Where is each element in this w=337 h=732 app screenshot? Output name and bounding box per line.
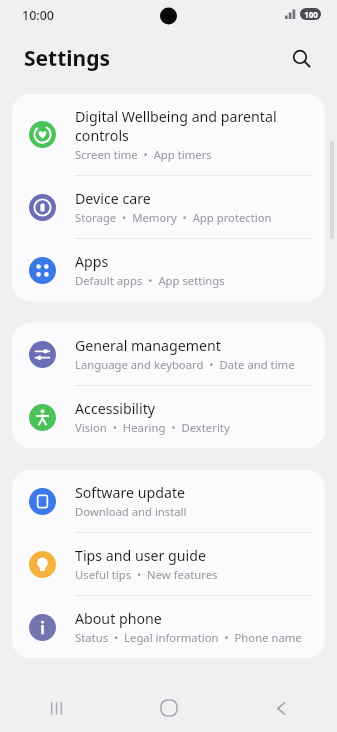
staticText: Digital Wellbeing and parental controls: [75, 107, 311, 145]
button[interactable]: Home: [145, 684, 193, 732]
staticText: General management: [75, 336, 221, 355]
button[interactable]: Search: [285, 42, 317, 74]
staticText: Useful tips • New features: [75, 567, 218, 582]
staticText: Download and install: [75, 504, 187, 519]
button[interactable]: Software update: [12, 470, 325, 533]
button[interactable]: Back: [257, 684, 305, 732]
staticText: About phone: [75, 609, 162, 628]
staticText: Device care: [75, 189, 151, 208]
button[interactable]: Apps: [12, 239, 325, 301]
button[interactable]: About phone: [12, 596, 325, 658]
staticText: Settings: [24, 44, 111, 73]
staticText: Status • Legal information • Phone name: [75, 630, 302, 645]
button[interactable]: Device care: [12, 176, 325, 239]
button[interactable]: Accessibility: [12, 386, 325, 448]
staticText: 10:00: [22, 7, 55, 24]
staticText: Vision • Hearing • Dexterity: [75, 420, 230, 435]
button[interactable]: Recents: [32, 684, 80, 732]
staticText: Tips and user guide: [75, 546, 206, 565]
button[interactable]: General management: [12, 323, 325, 386]
staticText: 100: [304, 9, 318, 20]
staticText: Software update: [75, 483, 186, 502]
staticText: Language and keyboard • Date and time: [75, 357, 295, 372]
staticText: Storage • Memory • App protection: [75, 210, 272, 225]
staticText: Screen time • App timers: [75, 147, 212, 162]
staticText: Default apps • App settings: [75, 273, 225, 288]
staticText: Accessibility: [75, 399, 156, 418]
button[interactable]: Tips and user guide: [12, 533, 325, 596]
button[interactable]: Digital Wellbeing and parental controls: [12, 94, 325, 176]
staticText: Apps: [75, 252, 109, 271]
